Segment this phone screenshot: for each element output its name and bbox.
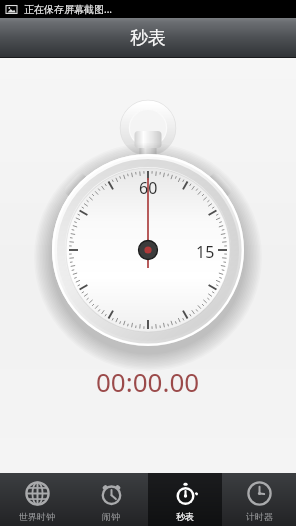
staticText: 正在保存屏幕截图...: [24, 2, 113, 16]
staticText: 15: [196, 241, 215, 263]
staticText: 00:00.00: [96, 364, 200, 399]
staticText: 60: [139, 177, 158, 199]
button[interactable]: 秒表: [148, 473, 222, 526]
staticText: 计时器: [246, 511, 273, 522]
staticText: 闹钟: [102, 511, 120, 522]
button[interactable]: 闹钟: [74, 473, 148, 526]
staticText: 世界时钟: [19, 511, 55, 522]
staticText: 秒表: [176, 511, 194, 522]
button[interactable]: 计时器: [222, 473, 296, 526]
button[interactable]: 世界时钟: [0, 473, 74, 526]
staticText: 秒表: [130, 27, 166, 50]
